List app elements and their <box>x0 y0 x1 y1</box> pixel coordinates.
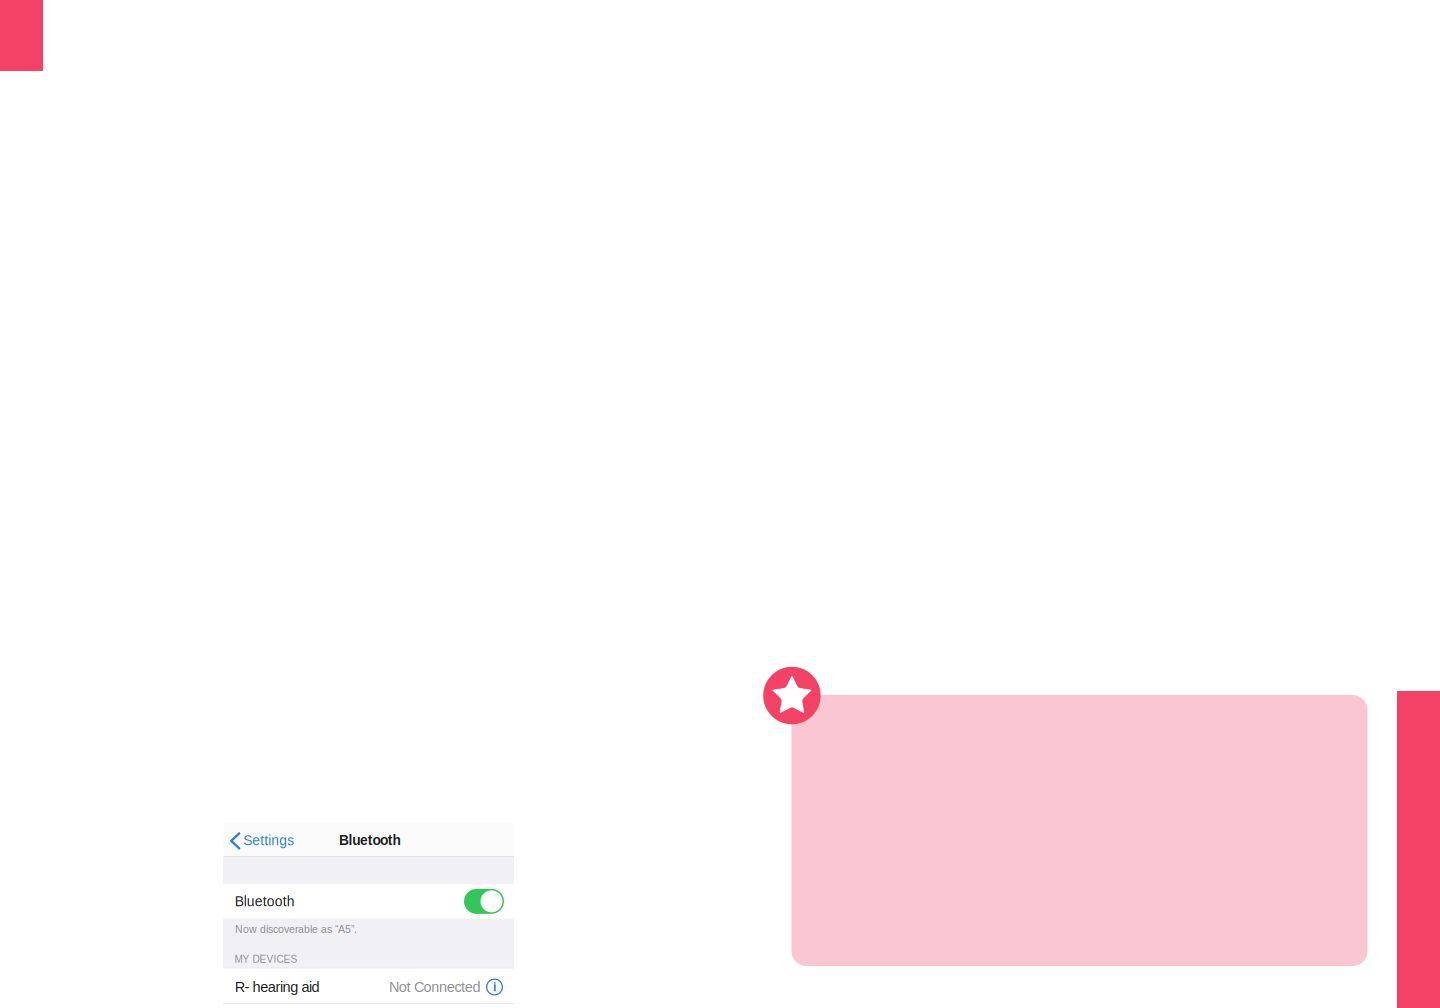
staticText: Settings <box>243 833 294 848</box>
staticText: R- hearing aid <box>235 979 320 995</box>
button[interactable]: Featured <box>763 667 821 724</box>
staticText: Bluetooth <box>339 832 400 848</box>
button[interactable]: R- hearing aid <box>223 968 514 1003</box>
button[interactable]: More info about R- hearing aid <box>486 978 503 995</box>
staticText: Now discoverable as “A5”. <box>235 923 357 935</box>
button[interactable]: Settings <box>223 823 343 856</box>
staticText: Not Connected <box>389 979 480 995</box>
staticText: i <box>493 980 496 994</box>
button[interactable]: Bluetooth <box>464 889 504 914</box>
staticText: Bluetooth <box>235 894 295 909</box>
staticText: MY DEVICES <box>234 953 297 965</box>
